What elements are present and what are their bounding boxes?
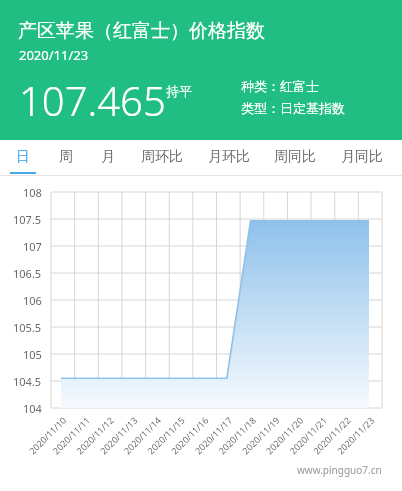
staticText: 周 [59,148,73,166]
staticText: 日 [16,148,30,166]
staticText: 月环比 [208,148,250,166]
staticText: 107.465 [19,73,166,127]
staticText: 月 [101,148,115,166]
button[interactable]: 日 [10,140,36,176]
button[interactable]: 月 [95,140,121,176]
staticText: www.pingguo7.cn [297,463,382,477]
staticText: 类型：日定基指数 [241,100,345,116]
button[interactable]: 月环比 [200,140,258,176]
button[interactable]: 周环比 [133,140,191,176]
button[interactable]: 月同比 [333,140,391,176]
staticText: 月同比 [341,148,383,166]
staticText: 周环比 [141,148,183,166]
button[interactable]: 周同比 [266,140,324,176]
staticText: 2020/11/23 [19,46,89,64]
staticText: 周同比 [274,148,316,166]
button[interactable]: 周 [53,140,79,176]
staticText: 持平 [166,83,192,99]
staticText: 种类：红富士 [241,78,319,94]
staticText: 产区苹果（红富士）价格指数 [18,19,265,43]
